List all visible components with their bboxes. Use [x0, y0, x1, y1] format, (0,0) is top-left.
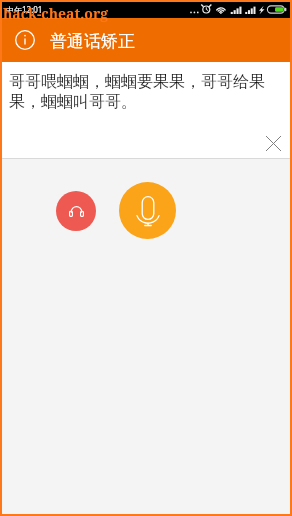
staticText: 中午12:01 — [6, 4, 43, 15]
button[interactable]: Close — [261, 131, 285, 155]
button[interactable]: Play — [56, 191, 96, 231]
staticText: 哥哥喂蝈蝈，蝈蝈要果果，哥哥给果果，蝈蝈叫哥哥。 — [9, 72, 280, 111]
button[interactable]: Info — [15, 30, 35, 50]
staticText: hack-cheat.org — [3, 4, 109, 23]
button[interactable]: Record — [119, 182, 176, 239]
staticText: 普通话矫正 — [50, 31, 135, 52]
